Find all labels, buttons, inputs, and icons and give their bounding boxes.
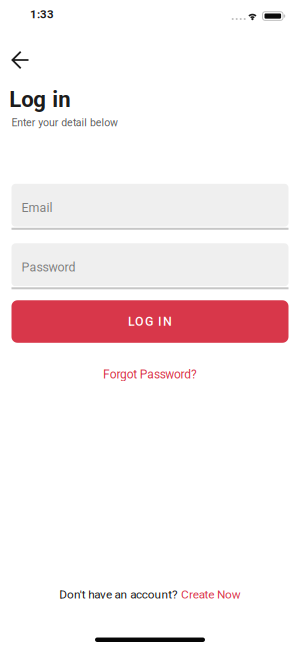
staticText: Log in bbox=[9, 86, 70, 112]
staticText: Email bbox=[21, 200, 52, 215]
staticText: Create Now bbox=[181, 588, 241, 601]
button[interactable]: Email bbox=[11, 184, 288, 230]
staticText: Forgot Password? bbox=[103, 367, 197, 381]
staticText: LOG IN bbox=[128, 314, 172, 329]
staticText: Don't have an account? bbox=[59, 588, 178, 601]
staticText: Password bbox=[21, 260, 75, 274]
button[interactable]: LOG IN bbox=[11, 300, 288, 343]
button[interactable]: Password bbox=[11, 243, 288, 289]
staticText: 1:33 bbox=[30, 8, 54, 21]
staticText: Enter your detail below bbox=[11, 116, 118, 129]
button[interactable]: Forgot Password? bbox=[103, 367, 197, 381]
button[interactable] bbox=[11, 51, 28, 68]
button[interactable]: Don't have an account? bbox=[59, 588, 241, 601]
